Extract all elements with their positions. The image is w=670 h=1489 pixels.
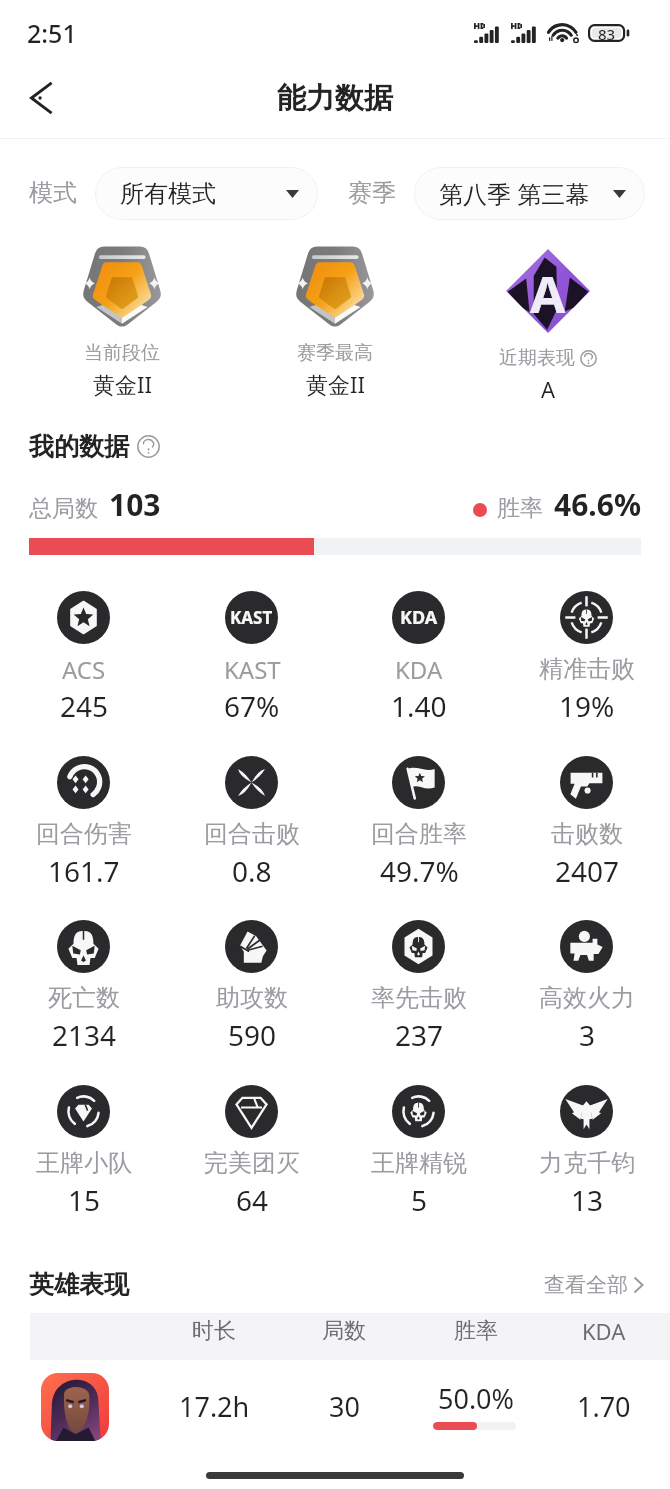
staticText: 英雄表现	[29, 1269, 129, 1300]
staticText: KAST	[224, 653, 281, 686]
staticText: 15	[68, 1181, 101, 1219]
staticText: 助攻数	[216, 983, 288, 1013]
staticText: 第八季 第三幕	[439, 177, 590, 210]
staticText: A	[530, 258, 566, 327]
staticText: KDA	[395, 653, 443, 686]
staticText: 模式	[29, 178, 77, 208]
staticText: 30	[329, 1388, 360, 1425]
button[interactable]: 高效火力	[503, 914, 670, 1072]
staticText: 总局数	[29, 494, 98, 523]
staticText: 胜率	[497, 494, 543, 523]
staticText: 5	[411, 1181, 428, 1219]
staticText: 能力数据	[277, 80, 393, 117]
staticText: 赛季最高	[297, 341, 373, 365]
staticText: KAST	[230, 606, 273, 629]
staticText: KDA	[582, 1316, 626, 1346]
staticText: 19%	[559, 687, 615, 725]
staticText: 161.7	[48, 852, 120, 890]
button[interactable]: 所有模式	[95, 167, 318, 220]
staticText: 局数	[322, 1317, 366, 1345]
staticText: 黄金II	[93, 369, 152, 399]
staticText: 64	[236, 1181, 269, 1219]
staticText: 3	[579, 1016, 596, 1054]
button[interactable]: 助攻数	[168, 914, 335, 1072]
staticText: 67%	[224, 687, 280, 725]
staticText: 237	[395, 1016, 444, 1054]
button[interactable]: 死亡数	[0, 914, 167, 1072]
staticText: 13	[571, 1181, 604, 1219]
button[interactable]: 力克千钧	[503, 1079, 670, 1237]
staticText: 回合伤害	[36, 819, 132, 849]
staticText: 赛季	[348, 178, 396, 208]
staticText: 2134	[52, 1016, 117, 1054]
staticText: 590	[228, 1016, 277, 1054]
staticText: 2:51	[27, 16, 77, 50]
button[interactable]: 王牌小队	[0, 1079, 167, 1237]
button[interactable]: 王牌精锐	[335, 1079, 502, 1237]
button[interactable]: A	[478, 245, 618, 403]
staticText: 黄金II	[306, 369, 365, 399]
staticText: 0.8	[232, 852, 272, 890]
button[interactable]: 完美团灭	[168, 1079, 335, 1237]
staticText: 完美团灭	[204, 1148, 300, 1178]
staticText: 103	[109, 484, 161, 525]
staticText: 王牌精锐	[371, 1148, 467, 1178]
staticText: 1.40	[391, 687, 447, 725]
button[interactable]: 当前段位	[52, 245, 192, 403]
staticText: KDA	[400, 605, 438, 630]
staticText: 率先击败	[371, 983, 467, 1013]
button[interactable]: Back	[15, 71, 69, 125]
staticText: 回合击败	[204, 819, 300, 849]
staticText: 查看全部	[544, 1272, 628, 1298]
staticText: 245	[60, 687, 109, 725]
button[interactable]: 第八季 第三幕	[414, 167, 645, 220]
staticText: 2407	[555, 852, 620, 890]
staticText: 王牌小队	[36, 1148, 132, 1178]
staticText: 死亡数	[48, 983, 120, 1013]
staticText: A	[541, 374, 556, 403]
staticText: 近期表现	[499, 346, 575, 370]
staticText: 我的数据	[29, 431, 129, 462]
button[interactable]: KDA	[335, 585, 502, 743]
button[interactable]: 回合胜率	[335, 750, 502, 908]
button[interactable]: KAST	[168, 585, 335, 743]
staticText: 50.0%	[438, 1380, 515, 1417]
button[interactable]: ACS	[0, 585, 167, 743]
staticText: 时长	[192, 1317, 236, 1345]
staticText: 胜率	[454, 1317, 498, 1345]
button[interactable]: 回合击败	[168, 750, 335, 908]
staticText: 力克千钧	[539, 1148, 635, 1178]
button[interactable]: 查看全部	[544, 1272, 644, 1298]
staticText: 高效火力	[539, 983, 635, 1013]
staticText: 1.70	[577, 1388, 631, 1425]
staticText: 精准击败	[539, 654, 635, 684]
button[interactable]: 击败数	[503, 750, 670, 908]
button[interactable]: 率先击败	[335, 914, 502, 1072]
staticText: 当前段位	[84, 341, 160, 365]
button[interactable]: 17.2h	[0, 1360, 670, 1455]
staticText: 49.7%	[380, 852, 459, 890]
staticText: 击败数	[551, 819, 623, 849]
staticText: 46.6%	[554, 484, 641, 525]
staticText: 83	[598, 24, 616, 42]
staticText: ACS	[62, 653, 106, 686]
button[interactable]: 回合伤害	[0, 750, 167, 908]
staticText: 所有模式	[120, 179, 216, 209]
button[interactable]: 赛季最高	[265, 245, 405, 403]
button[interactable]: 精准击败	[503, 585, 670, 743]
staticText: 回合胜率	[371, 819, 467, 849]
staticText: 17.2h	[179, 1388, 250, 1425]
